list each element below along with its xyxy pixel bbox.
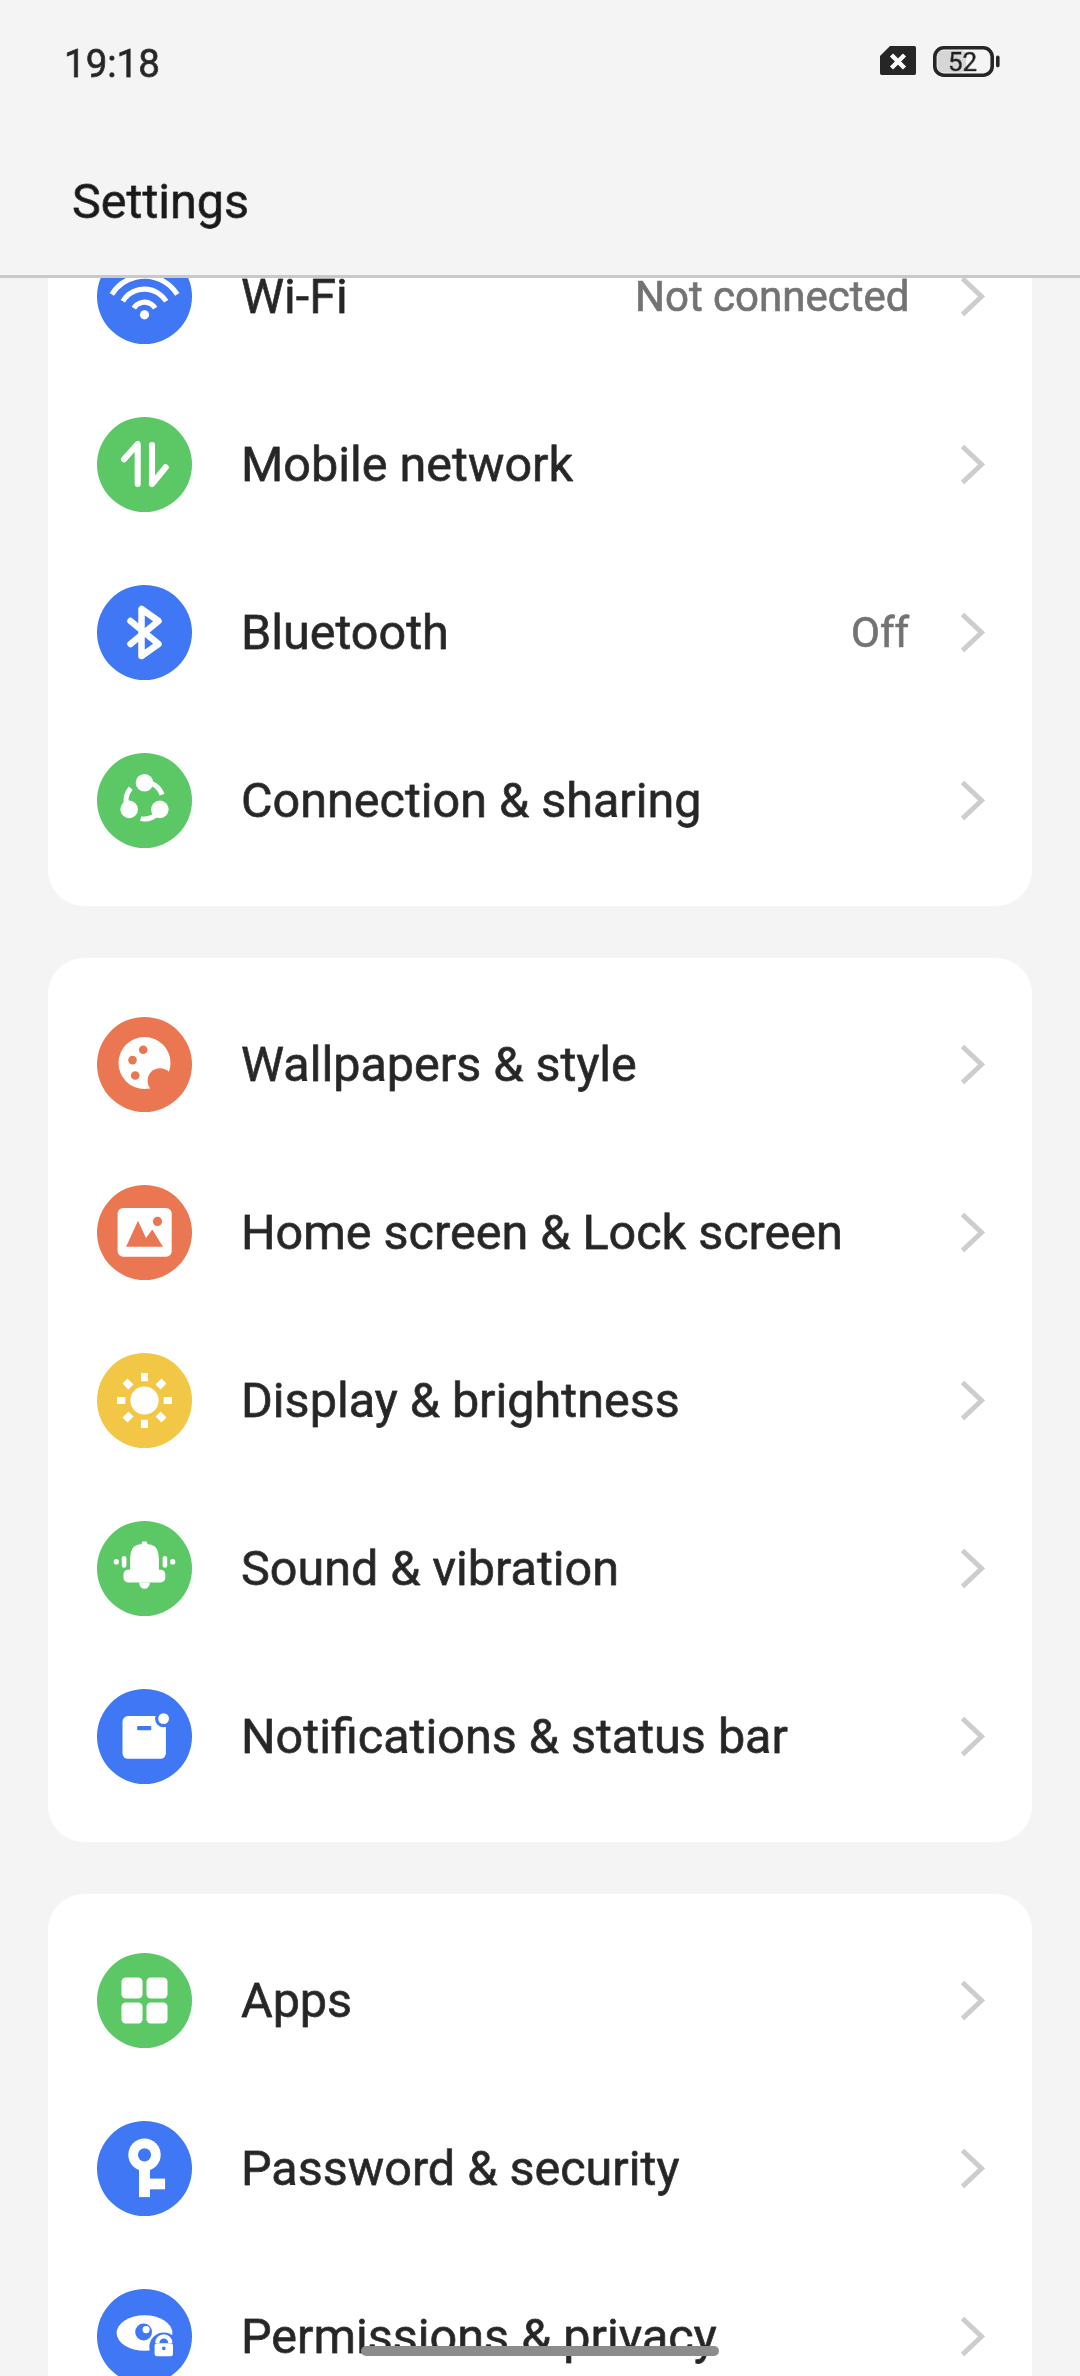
staticText: Off	[851, 608, 910, 657]
staticText: Mobile network	[241, 436, 574, 493]
staticText: Not connected	[635, 278, 910, 321]
staticText: Sound & vibration	[241, 1540, 620, 1597]
staticText: Off	[851, 608, 910, 657]
staticText: Permissions & privacy	[241, 2308, 717, 2365]
button[interactable]: Wallpapers & style	[48, 980, 1032, 1148]
staticText: Display & brightness	[241, 1372, 680, 1429]
staticText: Notifications & status bar	[241, 1708, 788, 1765]
staticText: Password & security	[241, 2140, 680, 2197]
staticText: Wi-Fi	[241, 278, 348, 325]
staticText: Wi-Fi	[241, 278, 348, 325]
button[interactable]: Connection & sharing	[48, 716, 1032, 884]
staticText: Not connected	[635, 278, 910, 321]
staticText: Connection & sharing	[241, 772, 702, 829]
staticText: Wallpapers & style	[241, 1036, 637, 1093]
staticText: Home screen & Lock screen	[241, 1204, 843, 1261]
button[interactable]: Bluetooth	[48, 548, 1032, 716]
button[interactable]: Wi-Fi	[48, 278, 1032, 380]
staticText: Permissions & privacy	[241, 2308, 717, 2365]
staticText: 19:18	[64, 41, 160, 86]
staticText: 52	[948, 47, 978, 77]
staticText: Apps	[241, 1972, 353, 2029]
staticText: Settings	[72, 173, 250, 230]
button[interactable]: Apps	[48, 1916, 1032, 2084]
staticText: Display & brightness	[241, 1372, 680, 1429]
button[interactable]: Notifications & status bar	[48, 1652, 1032, 1820]
button[interactable]: Permissions & privacy	[48, 2252, 1032, 2376]
staticText: Connection & sharing	[241, 772, 702, 829]
button[interactable]: Password & security	[48, 2084, 1032, 2252]
staticText: Bluetooth	[241, 604, 449, 661]
button[interactable]: Mobile network	[48, 380, 1032, 548]
other: Home gesture	[361, 2346, 719, 2356]
button[interactable]: Home screen & Lock screen	[48, 1148, 1032, 1316]
staticText: Mobile network	[241, 436, 574, 493]
staticText: Password & security	[241, 2140, 680, 2197]
staticText: 19:18	[64, 41, 160, 86]
staticText: 52	[948, 47, 978, 77]
staticText: Apps	[241, 1972, 353, 2029]
staticText: Home screen & Lock screen	[241, 1204, 843, 1261]
staticText: Wallpapers & style	[241, 1036, 637, 1093]
button[interactable]: Sound & vibration	[48, 1484, 1032, 1652]
staticText: Sound & vibration	[241, 1540, 620, 1597]
button[interactable]: Display & brightness	[48, 1316, 1032, 1484]
staticText: Notifications & status bar	[241, 1708, 788, 1765]
staticText: Bluetooth	[241, 604, 449, 661]
staticText: Settings	[72, 173, 250, 230]
